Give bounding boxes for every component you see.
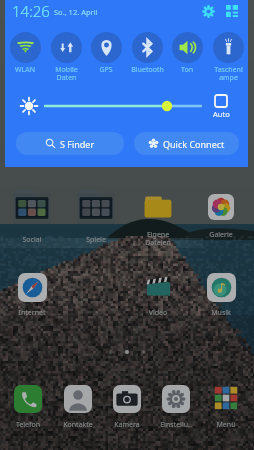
button[interactable]: Taschenl ampe — [208, 32, 248, 82]
button[interactable]: Mobile Daten — [46, 32, 86, 82]
button[interactable]: Eigene Dateien — [133, 190, 183, 244]
staticText: Kontakte — [53, 420, 103, 430]
button[interactable]: GPS — [86, 32, 126, 75]
staticText: Telefon — [3, 420, 53, 430]
staticText: Internet — [7, 308, 57, 318]
staticText: Taschenl ampe — [214, 65, 243, 82]
button[interactable]: Kontakte — [53, 383, 103, 434]
button[interactable]: Quick Connect — [134, 132, 239, 155]
staticText: Menü — [201, 420, 251, 430]
staticText: Bluetooth — [131, 65, 164, 75]
button[interactable]: WLAN — [5, 32, 45, 75]
button[interactable]: Video — [133, 271, 183, 322]
staticText: WLAN — [15, 65, 35, 75]
button[interactable]: Spiele — [71, 188, 121, 249]
staticText: 14:26 — [12, 1, 50, 21]
button[interactable]: Social — [7, 188, 57, 249]
staticText: Einstellu.. — [151, 420, 201, 430]
staticText: GPS — [99, 65, 113, 75]
staticText: So., 12. April — [54, 7, 98, 17]
button[interactable] — [43, 99, 203, 113]
staticText: S Finder — [60, 138, 95, 150]
button[interactable]: Internet — [7, 271, 57, 322]
button[interactable]: Kamera — [102, 383, 152, 434]
staticText: Galerie — [196, 230, 246, 240]
button[interactable]: Settings — [200, 3, 216, 19]
button[interactable]: Ton — [167, 32, 207, 75]
button[interactable]: S Finder — [16, 132, 124, 155]
staticText: Video — [133, 308, 183, 318]
staticText: Auto — [213, 109, 230, 119]
button[interactable]: Musik — [196, 271, 246, 322]
button[interactable]: Einstellu.. — [151, 383, 201, 434]
button[interactable]: Edit quick settings — [224, 3, 240, 19]
staticText: Social — [7, 235, 57, 245]
button[interactable]: Bluetooth — [127, 32, 167, 75]
staticText: Spiele — [71, 235, 121, 245]
staticText: Eigene Dateien — [133, 230, 183, 247]
button[interactable]: Menü — [201, 383, 251, 434]
staticText: Musik — [196, 308, 246, 318]
button[interactable]: Telefon — [3, 383, 53, 434]
staticText: Kamera — [102, 420, 152, 430]
button[interactable]: Galerie — [196, 192, 246, 244]
staticText: Mobile Daten — [55, 65, 78, 82]
staticText: Quick Connect — [163, 138, 225, 150]
staticText: Ton — [181, 65, 193, 75]
button[interactable]: Auto — [207, 94, 235, 119]
